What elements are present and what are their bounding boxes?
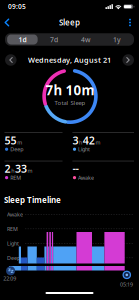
staticText: 42 (83, 133, 95, 147)
staticText: 09:05 (8, 2, 26, 11)
staticText: h (79, 139, 82, 146)
staticText: REM (10, 174, 21, 181)
staticText: 7d (50, 35, 58, 44)
staticText: m (28, 167, 33, 174)
staticText: Light (78, 146, 90, 153)
staticText: Total Sleep (54, 99, 85, 107)
staticText: Light (7, 240, 19, 247)
staticText: Sleep Timeline (4, 194, 61, 205)
staticText: Awake (78, 174, 94, 181)
staticText: m (95, 139, 100, 146)
staticText: m (17, 139, 22, 146)
staticText: 4w (81, 35, 90, 44)
staticText: 22:09 (3, 275, 16, 282)
staticText: h (11, 167, 14, 174)
staticText: 05:19 (120, 281, 133, 288)
staticText: REM (7, 225, 18, 233)
staticText: Deep (10, 146, 23, 153)
staticText: Deep (7, 254, 20, 262)
staticText: 2 (4, 162, 10, 176)
staticText: 7h 10m (45, 81, 94, 99)
staticText: 33 (15, 162, 27, 176)
staticText: Wednesday, August 21 (28, 55, 111, 65)
staticText: 55 (4, 133, 16, 147)
staticText: 1d (18, 35, 26, 44)
staticText: 3 (72, 133, 78, 147)
staticText: -- (72, 162, 78, 176)
staticText: 1y (113, 35, 121, 44)
staticText: Awake (7, 211, 23, 218)
staticText: Sleep (59, 17, 80, 28)
